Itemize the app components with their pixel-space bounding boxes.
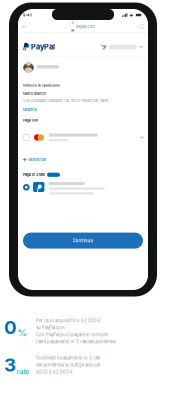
staticText: Marco Bianchi	[23, 91, 46, 96]
staticText: Paga in 3 rate	[23, 172, 45, 177]
button[interactable]: Account	[18, 61, 148, 72]
button[interactable]: Mostra tutti	[23, 157, 143, 162]
button[interactable]: Paga in 3 rate	[23, 182, 143, 195]
staticText: rate	[16, 368, 29, 376]
staticText: 0	[4, 316, 17, 339]
button[interactable]: Dettagli ordine	[100, 44, 143, 50]
staticText: Suddividi il pagamento in 3 rate	[36, 355, 100, 360]
button[interactable]: Modifica	[23, 107, 37, 112]
staticText: Paga con	[23, 118, 38, 122]
staticText: aA	[22, 24, 27, 29]
staticText: Per i tuoi acquisti fino a 2.000 €	[36, 318, 101, 323]
button[interactable]: Continua	[18, 233, 148, 249]
staticText: Via Giuseppe Garibaldi 128, 20121 Milano…	[23, 98, 108, 103]
button[interactable]: Mastercard	[23, 133, 143, 141]
staticText: da 30 € a 2.000 €.	[36, 369, 74, 375]
staticText: Continua	[72, 238, 93, 243]
staticText: rate il pagamento in 3 rate senza intere…	[36, 339, 116, 344]
staticText: su PayPal.com	[36, 325, 65, 330]
staticText: %	[17, 327, 26, 339]
staticText: 3	[4, 353, 16, 376]
staticText: Con PayPal puoi pagare in comode	[36, 332, 108, 337]
staticText: PayPal	[31, 42, 55, 51]
staticText: 9:41	[23, 13, 32, 17]
staticText: Mostra tutti	[28, 157, 46, 162]
staticText: Modifica	[23, 107, 37, 112]
staticText: paypal.com	[75, 24, 95, 29]
staticText: senza interessi su tutti gli acquisti	[36, 362, 100, 368]
staticText: Indirizzo di spedizione	[23, 83, 60, 87]
